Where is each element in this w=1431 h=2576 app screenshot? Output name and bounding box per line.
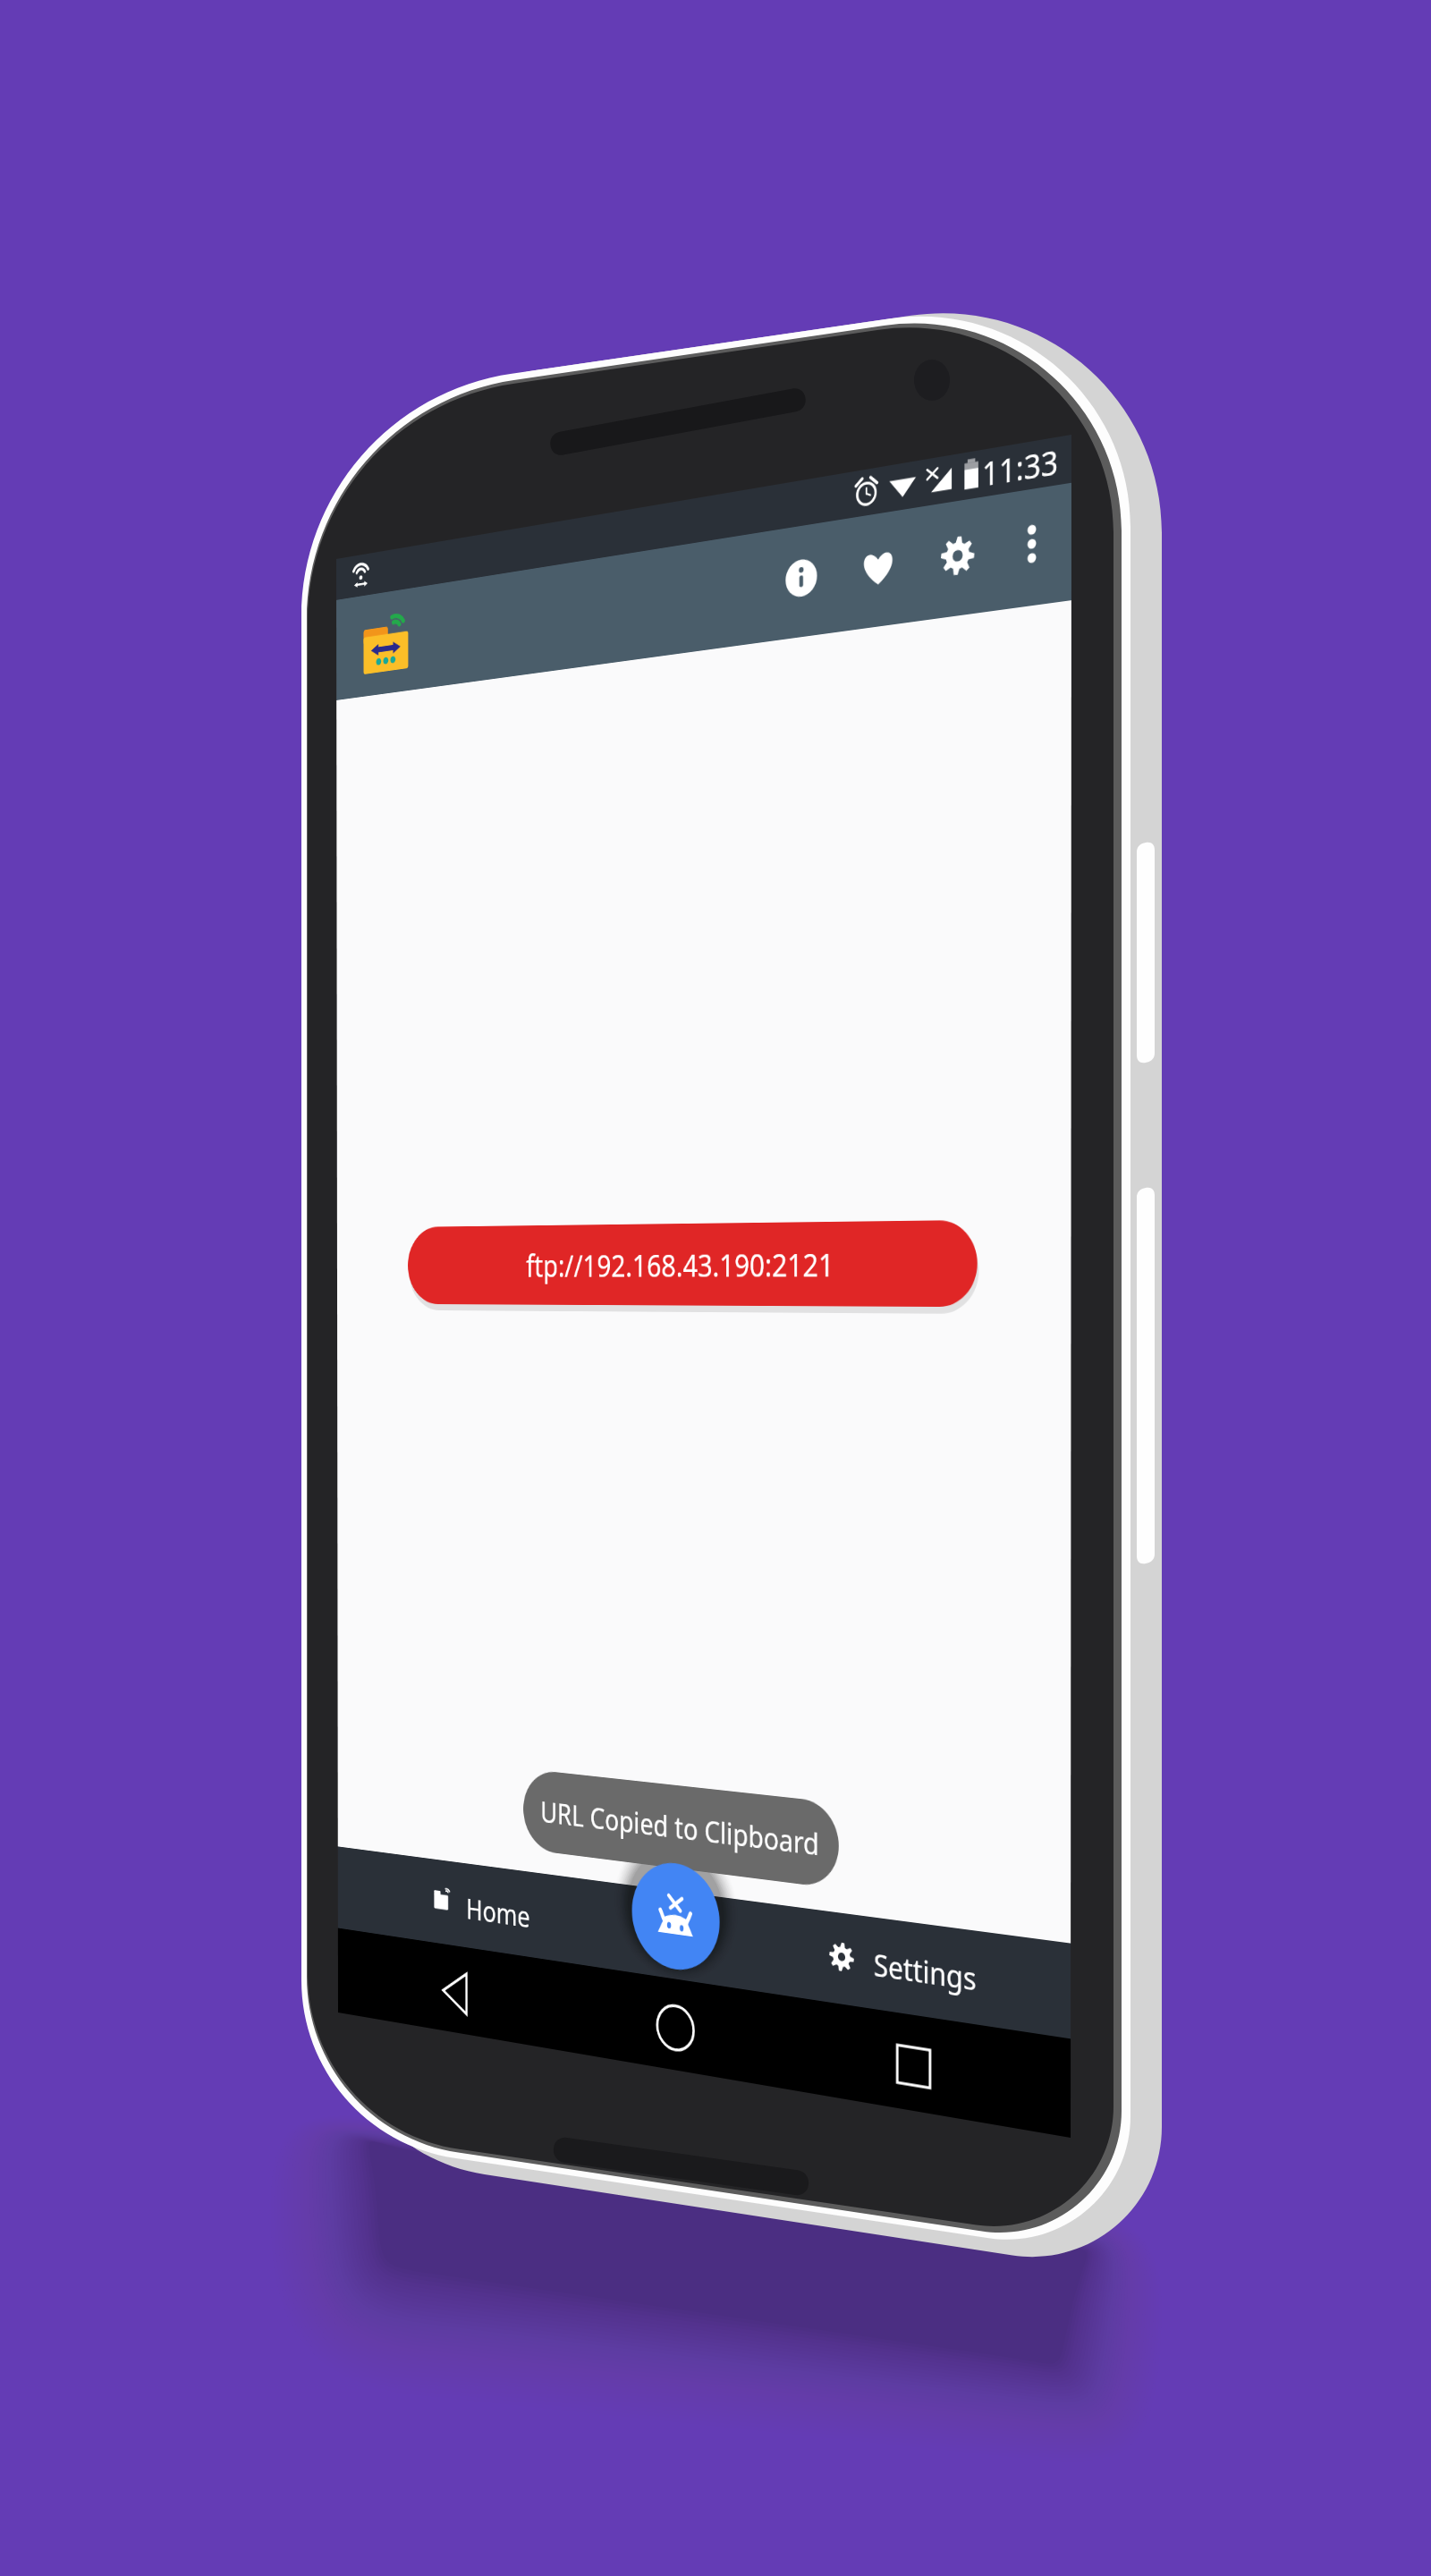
- button[interactable]: [0, 0, 1431, 2576]
